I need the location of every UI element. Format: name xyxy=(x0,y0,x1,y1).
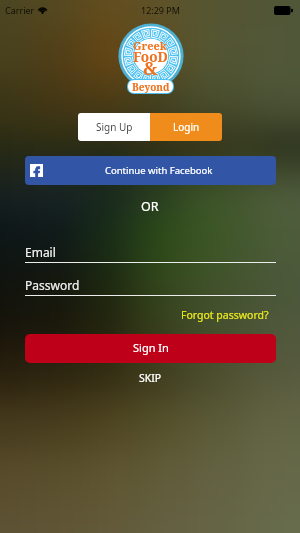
staticText: Email xyxy=(25,244,56,260)
staticText: Sign Up xyxy=(96,120,133,134)
staticText: Login xyxy=(173,120,200,134)
staticText: Greek xyxy=(133,38,167,53)
button[interactable]: Forgot password? xyxy=(181,308,269,322)
staticText: Sign In xyxy=(133,340,169,355)
staticText: Continue with Facebook xyxy=(105,164,213,177)
staticText: & xyxy=(143,56,158,81)
staticText: OR xyxy=(141,198,159,215)
staticText: 12:29 PM xyxy=(141,4,180,16)
staticText: SKIP xyxy=(139,371,162,385)
staticText: Password xyxy=(25,277,80,293)
button[interactable]: Continue with Facebook xyxy=(25,156,276,185)
button[interactable]: Login xyxy=(150,113,222,141)
staticText: FooD xyxy=(133,48,168,66)
staticText: Forgot password? xyxy=(181,308,269,322)
button[interactable]: SKIP xyxy=(133,370,168,386)
button[interactable]: Sign Up xyxy=(78,113,150,141)
staticText: Carrier xyxy=(5,4,35,16)
button[interactable]: Sign In xyxy=(25,334,276,363)
staticText: Beyond xyxy=(132,80,170,93)
